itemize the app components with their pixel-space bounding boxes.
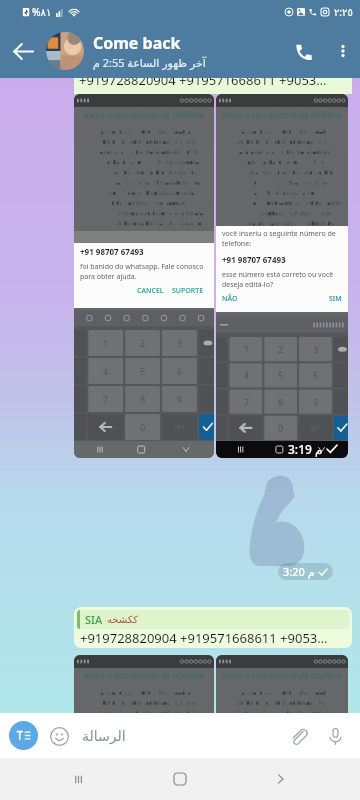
- button[interactable]: Screenshot 1: [74, 94, 214, 458]
- staticText: insira o seu número de telefone: [216, 670, 348, 681]
- staticText: você inseriu o seguinte número de: [222, 229, 336, 239]
- button[interactable]: Home: [156, 758, 204, 800]
- staticText: الرسالة: [82, 728, 126, 744]
- button[interactable]: +919728820904 +919571668611 +9053…: [74, 78, 352, 94]
- staticText: 6: [177, 365, 183, 377]
- staticText: SUPORTE: [172, 286, 204, 296]
- staticText: insira o seu número de telefone: [216, 109, 348, 120]
- button[interactable]: Profile photo: [46, 32, 84, 70]
- staticText: 0: [140, 421, 146, 433]
- staticText: 9: [313, 396, 319, 408]
- staticText: 0: [278, 422, 284, 434]
- staticText: 1: [244, 343, 250, 355]
- staticText: Come back: [93, 32, 181, 54]
- staticText: ٢:٢٥: [334, 5, 353, 19]
- staticText: +91 98707 67493: [80, 246, 144, 257]
- staticText: 7: [103, 393, 109, 405]
- staticText: 8: [278, 396, 284, 408]
- staticText: insira o seu número de telefone: [74, 109, 214, 120]
- staticText: para obter ajuda.: [80, 272, 137, 282]
- staticText: 7: [244, 396, 250, 408]
- staticText: 4: [244, 369, 250, 381]
- button[interactable]: Attach: [282, 720, 314, 752]
- staticText: م 3:19: [288, 441, 323, 457]
- button[interactable]: Call: [282, 29, 326, 73]
- staticText: @?!: [311, 424, 321, 432]
- staticText: SIA: [85, 612, 103, 627]
- staticText: +91 98707 67493: [222, 254, 286, 265]
- staticText: foi banido do whatsapp. Fale conosco: [80, 262, 204, 272]
- staticText: 5: [140, 365, 146, 377]
- staticText: SIM: [329, 294, 342, 304]
- staticText: 1: [103, 337, 109, 349]
- button[interactable]: Voice message: [319, 720, 351, 752]
- button[interactable]: Screenshot 4: [216, 655, 348, 715]
- button[interactable]: Emoji: [47, 724, 71, 748]
- staticText: NÃO: [222, 294, 238, 304]
- staticText: CANCEL: [137, 286, 164, 296]
- staticText: 4: [103, 365, 109, 377]
- button[interactable]: Screenshot 3: [74, 655, 214, 715]
- staticText: 9: [177, 393, 183, 405]
- staticText: @?!: [175, 423, 185, 431]
- staticText: 6: [313, 369, 319, 381]
- button[interactable]: Formatting: [9, 721, 38, 750]
- staticText: esse número está correto ou você: [222, 270, 334, 280]
- staticText: آخر ظهور الساعة 2:55 م: [93, 55, 206, 70]
- staticText: +919728820904 +919571668611 +9053…: [79, 78, 327, 87]
- staticText: م 3:20: [283, 564, 315, 579]
- button[interactable]: More options: [326, 34, 360, 68]
- staticText: 3: [313, 343, 319, 355]
- button[interactable]: Recents: [54, 758, 102, 800]
- staticText: insira o seu número de telefone: [74, 670, 214, 681]
- staticText: %٨١: [32, 5, 52, 19]
- staticText: 8: [140, 393, 146, 405]
- staticText: ككشخه: [107, 614, 139, 626]
- button[interactable]: Back: [0, 28, 46, 74]
- staticText: telefone:: [222, 239, 252, 249]
- button[interactable]: Screenshot 2: [216, 94, 348, 458]
- staticText: deseja editá-lo?: [222, 280, 273, 290]
- staticText: 3: [177, 337, 183, 349]
- staticText: +919728820904 +919571668611 +9053…: [80, 629, 328, 645]
- staticText: 5: [278, 369, 284, 381]
- staticText: 2: [278, 343, 284, 355]
- staticText: 2: [140, 337, 146, 349]
- button[interactable]: Back: [256, 758, 304, 800]
- button[interactable]: SIA: [74, 607, 352, 648]
